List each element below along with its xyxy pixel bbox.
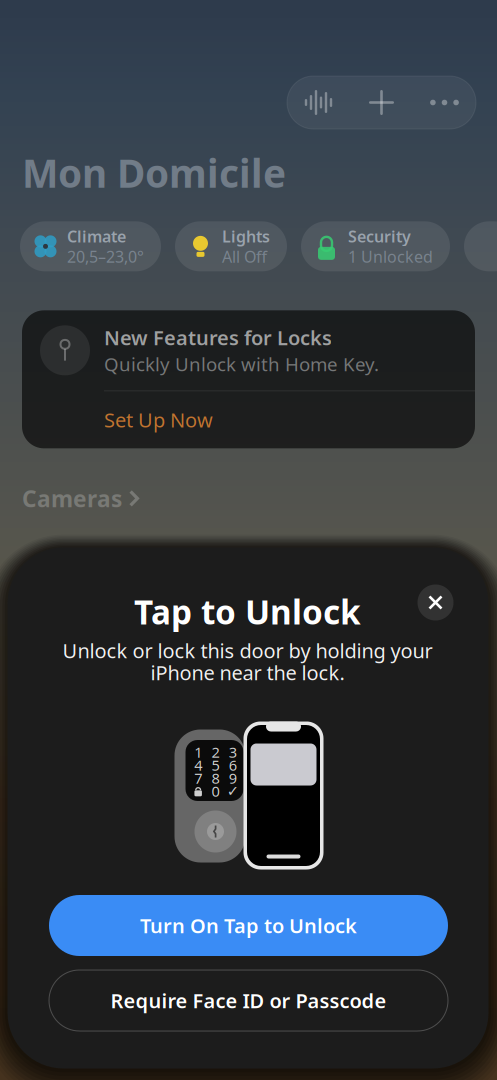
staticText: Unlock or lock this door by holding your bbox=[62, 637, 432, 664]
staticText: iPhone near the lock. bbox=[150, 659, 344, 686]
button[interactable]: Require Face ID or Passcode bbox=[49, 970, 448, 1031]
button[interactable]: Listen bbox=[287, 76, 350, 129]
staticText: 1 bbox=[194, 742, 202, 762]
staticText: 5 bbox=[211, 755, 219, 775]
staticText: Quickly Unlock with Home Key. bbox=[104, 352, 379, 376]
button[interactable]: Climate bbox=[20, 221, 161, 271]
staticText: 2 bbox=[211, 742, 219, 762]
button[interactable]: Turn On Tap to Unlock bbox=[49, 895, 448, 956]
staticText: Turn On Tap to Unlock bbox=[140, 912, 357, 939]
button[interactable]: Security bbox=[301, 221, 450, 271]
staticText: Lights bbox=[222, 226, 270, 247]
button[interactable] bbox=[464, 221, 497, 271]
staticText: Cameras bbox=[22, 483, 122, 513]
staticText: 9 bbox=[229, 768, 237, 788]
staticText: 6 bbox=[229, 755, 237, 775]
staticText: Set Up Now bbox=[104, 407, 213, 433]
staticText: 7 bbox=[194, 768, 202, 788]
staticText: ✓ bbox=[227, 783, 239, 799]
staticText: Tap to Unlock bbox=[134, 589, 361, 634]
staticText: 1 Unlocked bbox=[348, 246, 433, 267]
staticText: 20,5–23,0° bbox=[67, 246, 144, 267]
staticText: Security bbox=[348, 226, 411, 247]
staticText: New Features for Locks bbox=[104, 324, 332, 351]
button[interactable]: Close bbox=[413, 580, 457, 624]
button[interactable]: Lights bbox=[175, 221, 287, 271]
staticText: 8 bbox=[211, 768, 219, 788]
button[interactable]: Set Up Now bbox=[22, 391, 475, 448]
staticText: 4 bbox=[194, 755, 202, 775]
button[interactable]: Add bbox=[350, 76, 413, 129]
staticText: Require Face ID or Passcode bbox=[110, 987, 386, 1014]
staticText: 0 bbox=[211, 781, 219, 801]
staticText: 3 bbox=[229, 742, 237, 762]
staticText: All Off bbox=[222, 246, 267, 267]
staticText: Climate bbox=[67, 226, 126, 247]
staticText: Mon Domicile bbox=[22, 147, 286, 198]
button[interactable]: More bbox=[413, 76, 476, 129]
